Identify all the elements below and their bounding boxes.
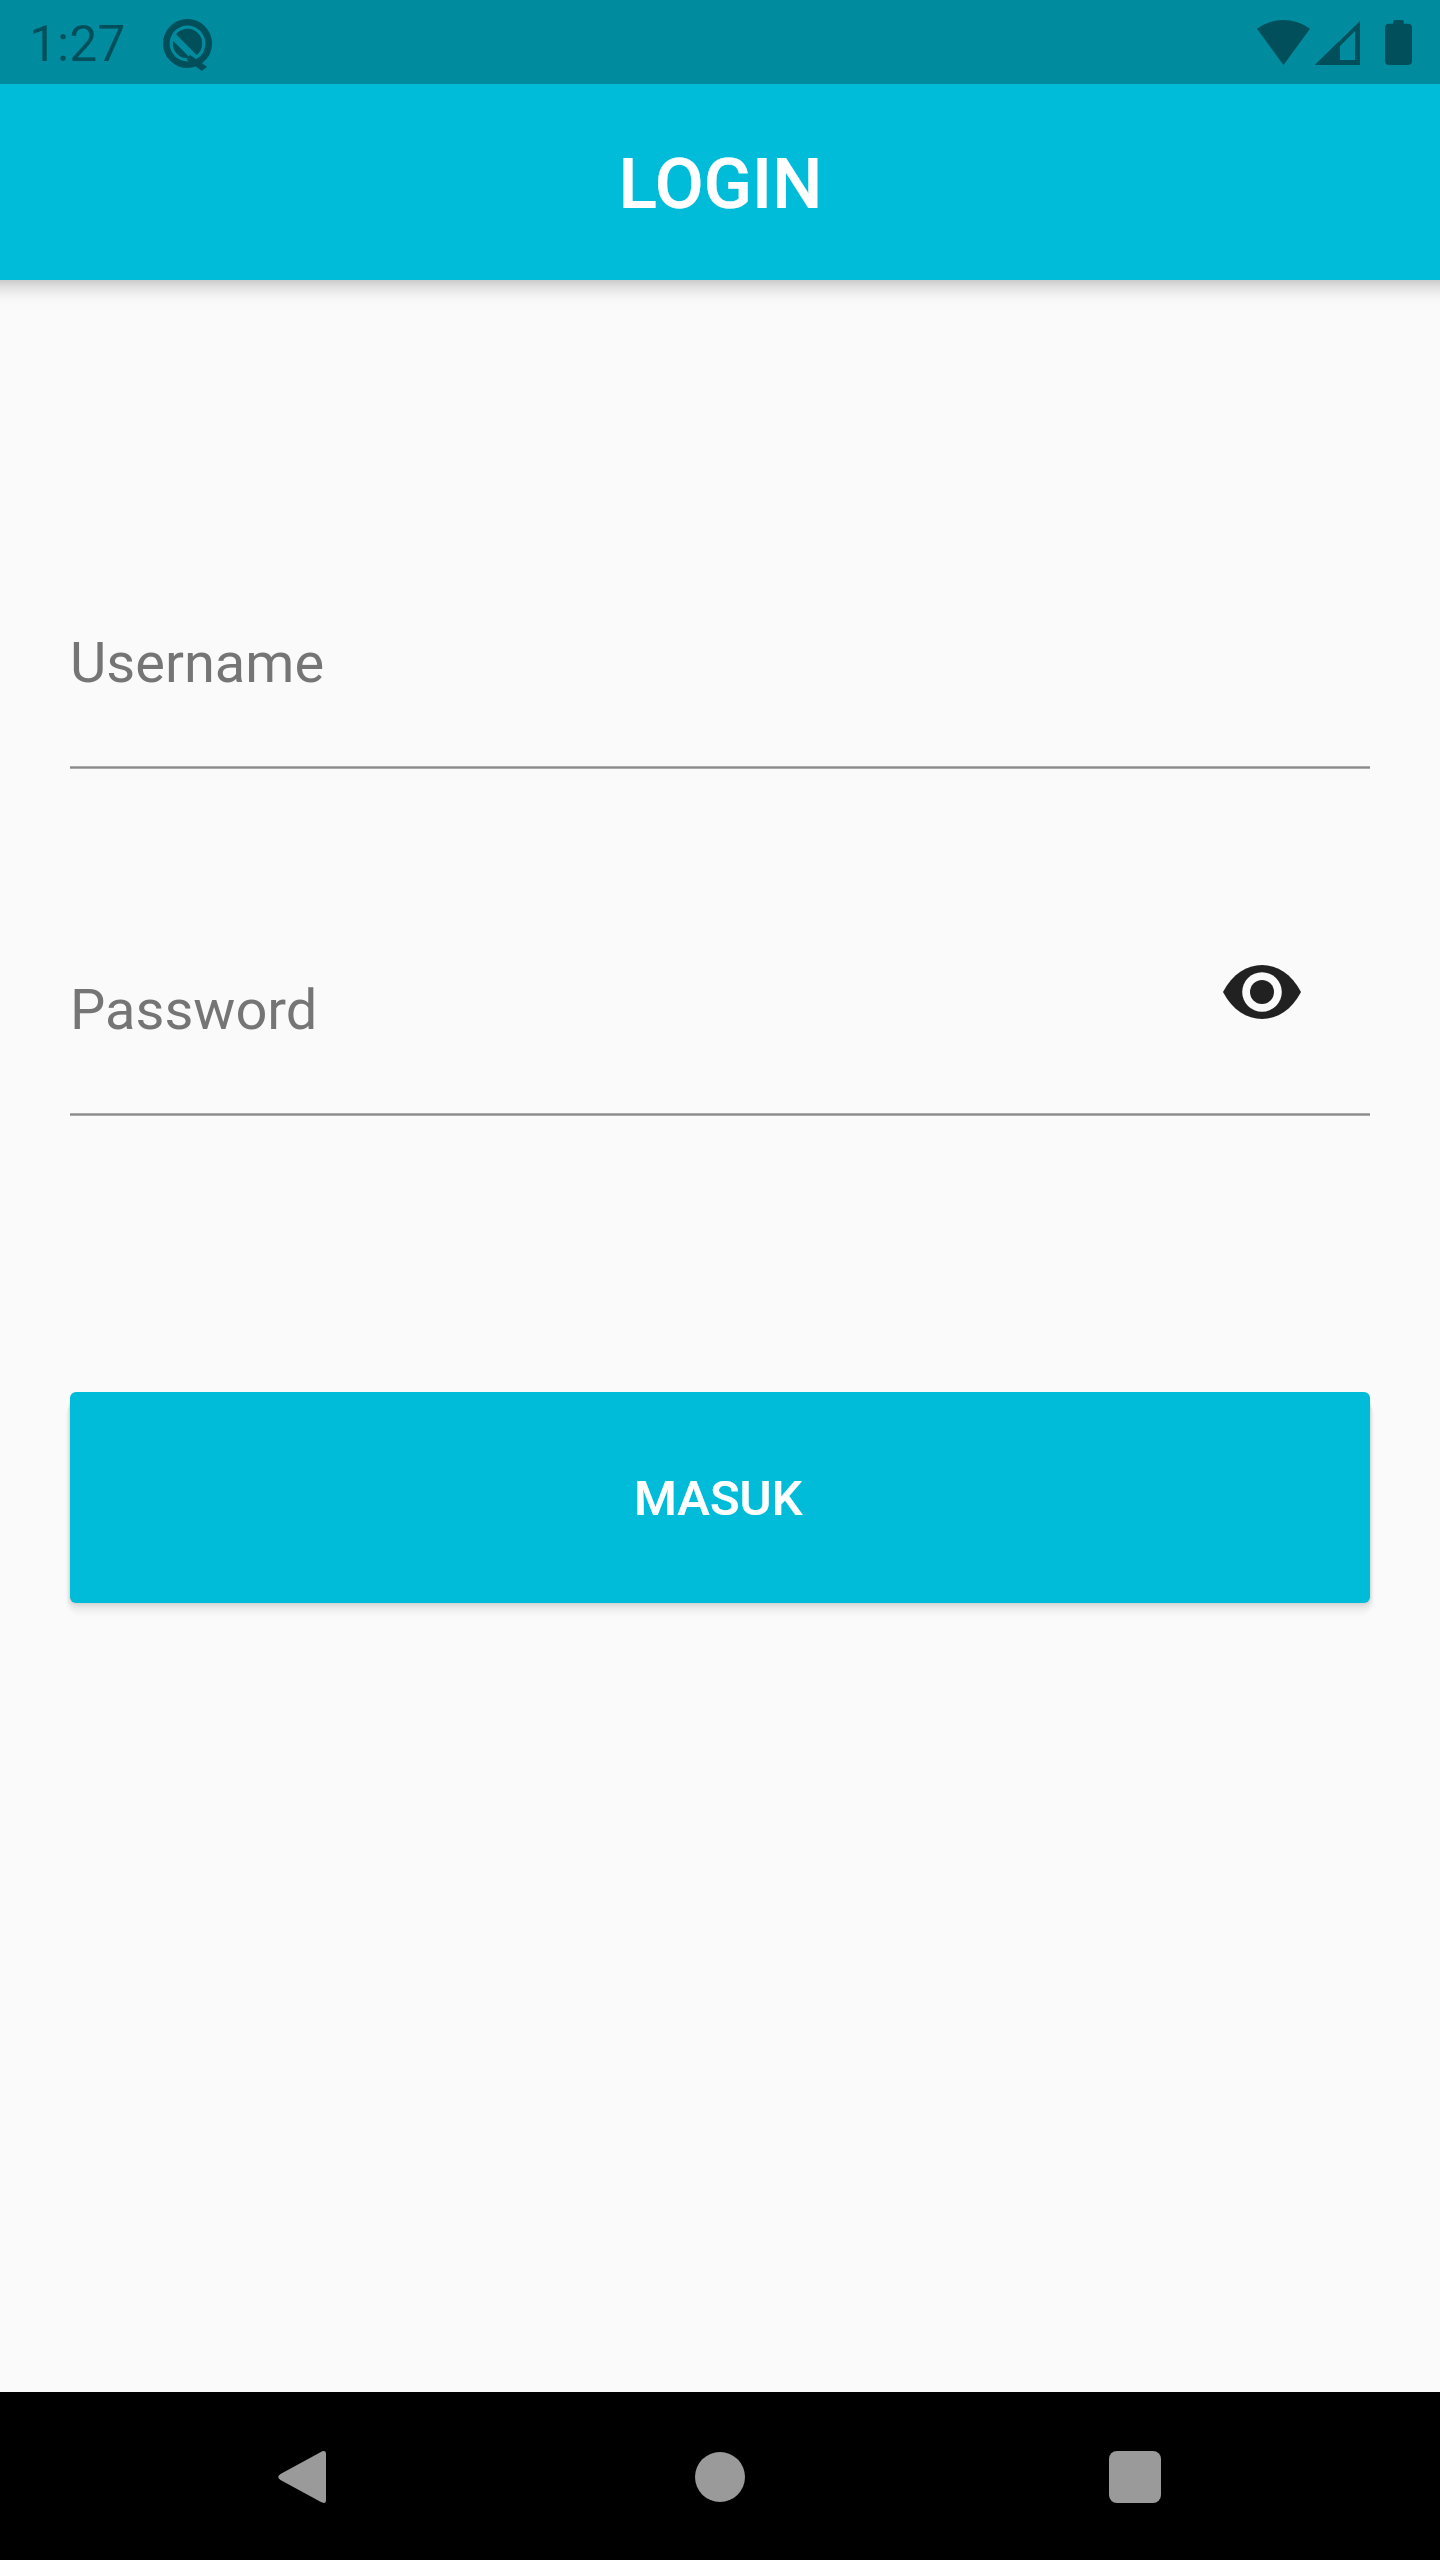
staticText: MASUK [634,1470,803,1527]
button[interactable]: Show password [1207,942,1317,1042]
button[interactable]: MASUK [70,1392,1370,1603]
staticText: Username [70,630,325,696]
button[interactable]: Home [640,2397,800,2557]
staticText: Password [70,977,318,1043]
staticText: LOGIN [618,142,823,225]
staticText: 1:27 [29,15,126,74]
button[interactable]: Recent apps [1055,2397,1215,2557]
button[interactable]: Back [221,2397,381,2557]
